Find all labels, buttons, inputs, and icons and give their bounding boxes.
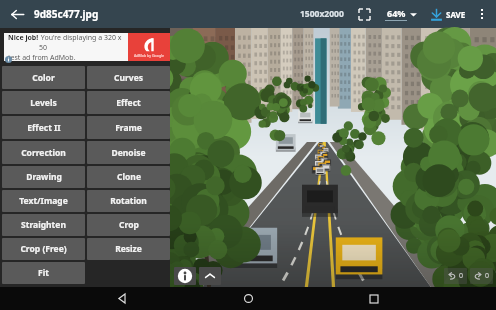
button[interactable]: Back <box>109 287 135 310</box>
button[interactable]: Navigate up <box>0 0 34 28</box>
button[interactable]: Drawing <box>2 166 85 188</box>
staticText: Fit <box>38 267 49 279</box>
button[interactable]: Crop (Free) <box>2 238 85 260</box>
button[interactable]: Redo <box>470 268 493 284</box>
staticText: Crop (Free) <box>20 243 67 255</box>
button[interactable]: Denoise <box>87 141 170 164</box>
button[interactable]: Fit to screen <box>354 4 374 24</box>
button[interactable]: Frame <box>87 116 170 139</box>
button[interactable]: More options <box>472 0 492 28</box>
staticText: Text/Image <box>19 195 68 207</box>
button[interactable]: Effect <box>87 91 170 114</box>
staticText: Crop <box>119 219 139 231</box>
staticText: test ad from AdMob. <box>8 53 76 61</box>
button[interactable]: Levels <box>2 91 85 114</box>
button[interactable]: Undo <box>444 268 467 284</box>
button[interactable]: 64% <box>383 7 419 21</box>
button[interactable]: Rotation <box>87 190 170 212</box>
button[interactable]: Resize <box>87 238 170 260</box>
staticText: Drawing <box>26 171 62 183</box>
staticText: 64% <box>387 7 406 19</box>
staticText: Effect <box>116 97 141 109</box>
staticText: Levels <box>30 97 57 109</box>
staticText: Nice job! <box>8 33 39 43</box>
staticText: Rotation <box>110 195 147 207</box>
staticText: Curves <box>114 72 143 84</box>
staticText: Resize <box>115 243 142 255</box>
button[interactable]: Color <box>2 66 85 89</box>
staticText: Effect II <box>27 122 61 134</box>
staticText: Denoise <box>111 147 146 159</box>
staticText: 0 <box>459 271 464 281</box>
staticText: Frame <box>115 122 142 134</box>
staticText: Clone <box>117 171 141 183</box>
staticText: You're displaying a 320 x 50 <box>39 33 126 53</box>
button[interactable]: Expand <box>199 267 221 285</box>
button[interactable]: Text/Image <box>2 190 85 212</box>
staticText: Color <box>32 72 55 84</box>
button[interactable]: Straighten <box>2 214 85 236</box>
button[interactable]: Effect II <box>2 116 85 139</box>
button[interactable]: Correction <box>2 141 85 164</box>
button[interactable]: Curves <box>87 66 170 89</box>
staticText: 9d85c477.jpg <box>34 7 99 21</box>
button[interactable]: SAVE <box>427 7 468 22</box>
button[interactable]: Crop <box>87 214 170 236</box>
button[interactable]: Clone <box>87 166 170 188</box>
button[interactable]: Fit <box>2 262 85 284</box>
staticText: Correction <box>21 147 66 159</box>
staticText: 0 <box>485 271 490 281</box>
staticText: SAVE <box>446 9 466 20</box>
button[interactable]: Recent apps <box>361 287 387 310</box>
button[interactable]: Nice job! <box>4 33 170 61</box>
staticText: 1500x2000 <box>300 8 344 20</box>
button[interactable]: Home <box>235 287 261 310</box>
staticText: AdMob by Google <box>134 53 165 58</box>
button[interactable]: Info <box>174 267 196 285</box>
staticText: Straighten <box>21 219 66 231</box>
